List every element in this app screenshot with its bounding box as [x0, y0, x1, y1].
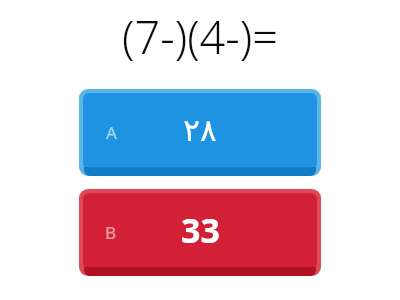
button[interactable]: A — [79, 89, 321, 176]
staticText: B — [105, 221, 117, 241]
staticText: A — [106, 121, 117, 141]
staticText: 33 — [181, 207, 220, 253]
button[interactable]: B — [79, 189, 321, 276]
staticText: ٢٨ — [183, 112, 217, 148]
staticText: (7-)(4-)= — [0, 6, 400, 67]
